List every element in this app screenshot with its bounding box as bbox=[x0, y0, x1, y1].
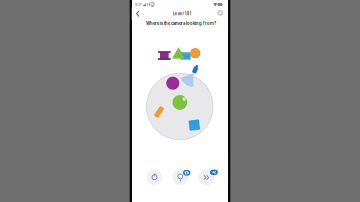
button[interactable]: Level 181 bbox=[168, 8, 196, 20]
button[interactable]: Back bbox=[132, 7, 144, 20]
staticText: Level 181 bbox=[172, 11, 191, 16]
button[interactable]: Restart level bbox=[145, 168, 164, 187]
staticText: 9:31 bbox=[135, 2, 142, 7]
staticText: Ad bbox=[212, 170, 216, 174]
button[interactable]: Skip level — watch ad bbox=[197, 168, 216, 187]
staticText: Where is the camera looking from? bbox=[146, 21, 216, 26]
button[interactable]: Hint bbox=[171, 168, 190, 187]
button[interactable]: Settings bbox=[215, 7, 226, 18]
